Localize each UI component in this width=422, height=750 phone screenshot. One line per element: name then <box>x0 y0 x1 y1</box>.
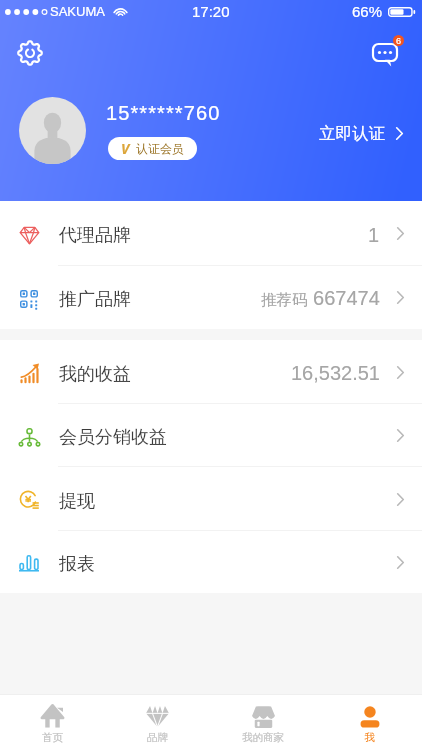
button[interactable]: V <box>108 137 197 160</box>
staticText: 66% <box>352 3 383 20</box>
staticText: 推广品牌 <box>59 288 131 311</box>
staticText: SAKUMA <box>50 4 105 19</box>
button[interactable]: 首页 <box>0 695 105 750</box>
staticText: 1 <box>368 224 380 246</box>
button[interactable]: 提现 <box>0 467 422 531</box>
staticText: 6 <box>396 36 402 46</box>
staticText: V <box>121 139 130 158</box>
button[interactable]: 我的收益 <box>0 340 422 404</box>
button[interactable]: 会员分销收益 <box>0 404 422 467</box>
staticText: 代理品牌 <box>59 224 131 247</box>
staticText: 我的商家 <box>242 731 284 744</box>
button[interactable]: Messages <box>370 35 408 73</box>
staticText: 品牌 <box>147 731 168 744</box>
button[interactable]: 代理品牌 <box>0 201 422 266</box>
button[interactable]: 立即认证 <box>303 116 422 151</box>
button[interactable]: 我 <box>316 695 422 750</box>
staticText: 提现 <box>59 490 95 513</box>
staticText: 15******760 <box>106 102 221 124</box>
button[interactable]: 推广品牌 <box>0 266 422 329</box>
button[interactable]: Avatar <box>19 97 86 164</box>
staticText: 推荐码 667474 <box>261 287 380 310</box>
staticText: 立即认证 <box>319 123 385 144</box>
button[interactable]: 报表 <box>0 531 422 593</box>
staticText: 我 <box>364 731 375 744</box>
staticText: 会员分销收益 <box>59 426 167 449</box>
staticText: 报表 <box>59 553 95 576</box>
staticText: 17:20 <box>192 3 230 20</box>
staticText: 认证会员 <box>136 141 184 156</box>
staticText: 首页 <box>42 731 63 744</box>
staticText: 我的收益 <box>59 363 131 386</box>
button[interactable]: 品牌 <box>105 695 210 750</box>
button[interactable]: Settings <box>13 36 47 70</box>
button[interactable]: 我的商家 <box>210 695 316 750</box>
staticText: 16,532.51 <box>291 362 380 384</box>
